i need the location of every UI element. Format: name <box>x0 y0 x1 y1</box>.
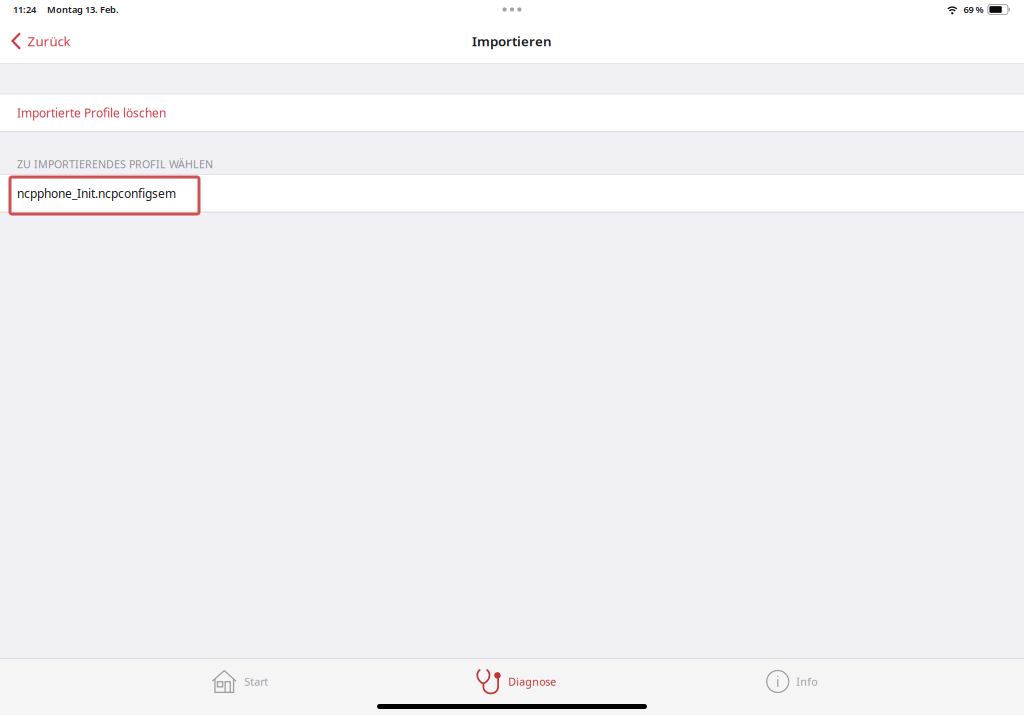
button[interactable]: Importierte Profile löschen <box>0 94 1024 131</box>
staticText: 11:24 <box>13 3 36 16</box>
button[interactable]: Zurück <box>0 21 82 60</box>
button[interactable]: ncpphone_Init.ncpconfigsem <box>0 175 1024 212</box>
staticText: Info <box>796 674 817 689</box>
staticText: Importierte Profile löschen <box>17 105 166 121</box>
button[interactable]: Start <box>102 661 378 702</box>
staticText: Diagnose <box>508 674 556 689</box>
staticText: Zurück <box>27 32 70 50</box>
staticText: ncpphone_Init.ncpconfigsem <box>17 185 176 201</box>
staticText: 69 % <box>963 3 983 16</box>
button[interactable]: Info <box>654 661 930 702</box>
staticText: Montag 13. Feb. <box>47 3 119 16</box>
staticText: ZU IMPORTIERENDES PROFIL WÄHLEN <box>17 157 213 171</box>
staticText: Importieren <box>472 32 552 50</box>
button[interactable]: Diagnose <box>378 661 654 702</box>
staticText: Start <box>244 674 268 689</box>
